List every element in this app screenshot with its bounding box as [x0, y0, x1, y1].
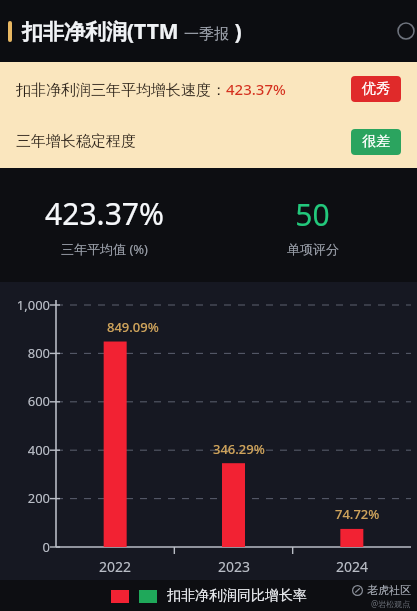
staticText: 50: [295, 194, 330, 235]
staticText: 600: [27, 392, 50, 410]
button[interactable]: 三年增长稳定程度: [16, 115, 401, 168]
staticText: 2022: [99, 557, 132, 576]
staticText: 849.09%: [107, 318, 159, 336]
staticText: 扣非净利润三年平均增长速度：423.37%: [16, 79, 351, 99]
staticText: 扣非净利润(TTM 一季报 ): [22, 17, 242, 46]
button[interactable]: 50: [208, 168, 417, 282]
staticText: 346.29%: [213, 440, 265, 458]
staticText: 很差: [362, 133, 390, 151]
staticText: 三年平均值 (%): [61, 240, 148, 258]
staticText: 200: [27, 489, 50, 507]
button[interactable]: 扣非净利润三年平均增长速度：423.37%: [16, 62, 401, 115]
staticText: 2023: [218, 557, 251, 576]
staticText: 单项评分: [287, 241, 339, 257]
staticText: 74.72%: [335, 505, 380, 523]
staticText: 2024: [336, 557, 369, 576]
staticText: 1,000: [16, 296, 50, 314]
staticText: 优秀: [362, 80, 390, 98]
button[interactable]: 423.37%: [0, 168, 208, 282]
staticText: 老虎社区: [367, 583, 411, 597]
staticText: 扣非净利润同比增长率: [167, 587, 307, 605]
staticText: 400: [27, 441, 50, 459]
button[interactable]: 扣非净利润(TTM 一季报 ): [0, 0, 417, 62]
staticText: 800: [27, 344, 50, 362]
button[interactable]: 扣非净利润同比增长率: [111, 587, 307, 605]
staticText: 三年增长稳定程度: [16, 132, 351, 151]
staticText: @岩松观点: [371, 598, 411, 609]
button[interactable]: More info: [397, 22, 415, 40]
staticText: 423.37%: [45, 193, 164, 234]
staticText: 0: [42, 538, 50, 556]
